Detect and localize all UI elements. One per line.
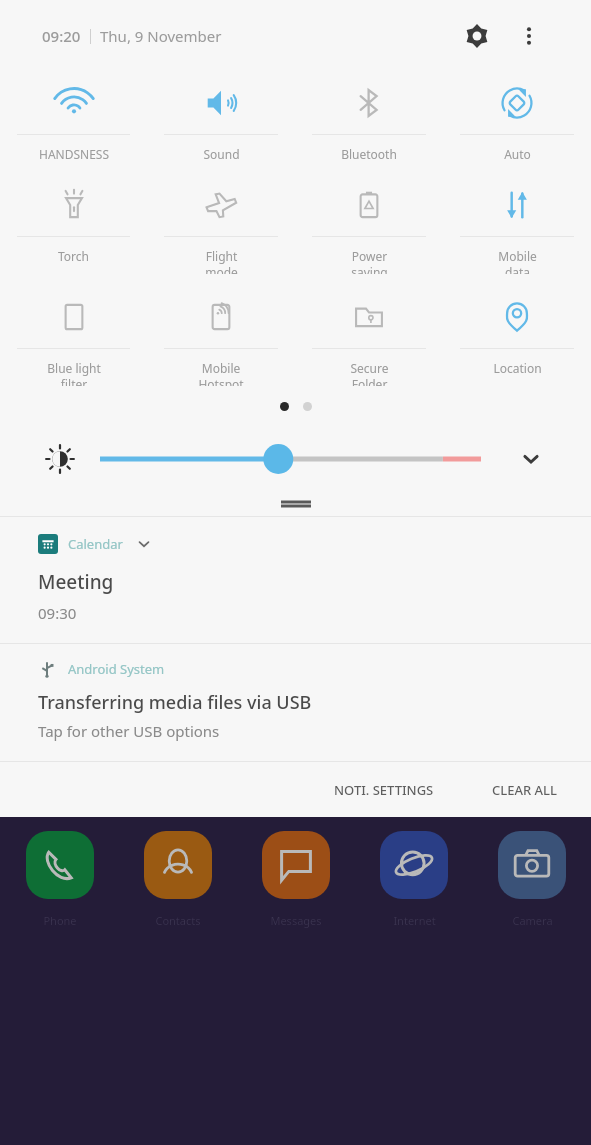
button[interactable]: Flight mode xyxy=(147,162,295,274)
button[interactable]: CLEAR ALL xyxy=(476,771,573,809)
staticText: CLEAR ALL xyxy=(492,781,557,799)
staticText: Blue light filter xyxy=(47,360,101,386)
button[interactable]: Power saving xyxy=(295,162,443,274)
staticText: Meeting xyxy=(38,569,114,595)
button[interactable]: NOTI. SETTINGS xyxy=(318,771,450,809)
button[interactable]: Internet xyxy=(355,831,473,928)
button[interactable]: Mobile Hotspot xyxy=(147,274,295,386)
staticText: Messages xyxy=(270,913,322,928)
staticText: 09:20 xyxy=(42,26,81,46)
staticText: Mobile Hotspot xyxy=(198,360,244,386)
button[interactable]: Bluetooth xyxy=(295,72,443,162)
button[interactable]: Torch xyxy=(0,162,147,274)
staticText: Sound xyxy=(203,146,240,162)
staticText: HANDSNESS xyxy=(39,146,109,162)
button[interactable]: Blue light filter xyxy=(0,274,147,386)
staticText: Contacts xyxy=(155,913,201,928)
staticText: Auto rotate xyxy=(500,146,535,162)
button[interactable]: Phone xyxy=(0,831,119,928)
staticText: Android System xyxy=(68,660,165,678)
staticText: Transferring media files via USB xyxy=(38,690,312,715)
staticText: Phone xyxy=(43,913,77,928)
staticText: Location xyxy=(493,360,542,376)
button[interactable] xyxy=(100,442,481,476)
staticText: Secure Folder xyxy=(350,360,389,386)
staticText: Mobile data xyxy=(498,248,537,274)
staticText: Bluetooth xyxy=(341,146,397,162)
button[interactable]: Mobile data xyxy=(443,162,591,274)
button[interactable]: Location xyxy=(443,274,591,386)
staticText: Tap for other USB options xyxy=(38,721,220,741)
button[interactable]: Camera xyxy=(473,831,591,928)
staticText: Camera xyxy=(512,913,553,928)
staticText: 09:30 xyxy=(38,603,77,623)
button[interactable]: Settings xyxy=(455,14,499,58)
staticText: Flight mode xyxy=(205,248,238,274)
button[interactable]: HANDSNESS xyxy=(0,72,147,162)
button[interactable]: Auto rotate xyxy=(443,72,591,162)
staticText: Power saving xyxy=(351,248,388,274)
staticText: Thu, 9 November xyxy=(100,26,222,46)
button[interactable]: Contacts xyxy=(119,831,237,928)
staticText: NOTI. SETTINGS xyxy=(334,781,434,799)
staticText: Calendar xyxy=(68,535,123,553)
button[interactable]: Calendar xyxy=(0,517,591,643)
button[interactable]: Expand brightness xyxy=(509,437,553,481)
staticText: Torch xyxy=(58,248,89,264)
button[interactable]: Android System xyxy=(0,644,591,761)
button[interactable]: More options xyxy=(507,14,551,58)
button[interactable]: Secure Folder xyxy=(295,274,443,386)
button[interactable]: Sound xyxy=(147,72,295,162)
button[interactable]: Brightness xyxy=(38,437,82,481)
button[interactable]: Messages xyxy=(237,831,355,928)
staticText: Internet xyxy=(393,913,436,928)
